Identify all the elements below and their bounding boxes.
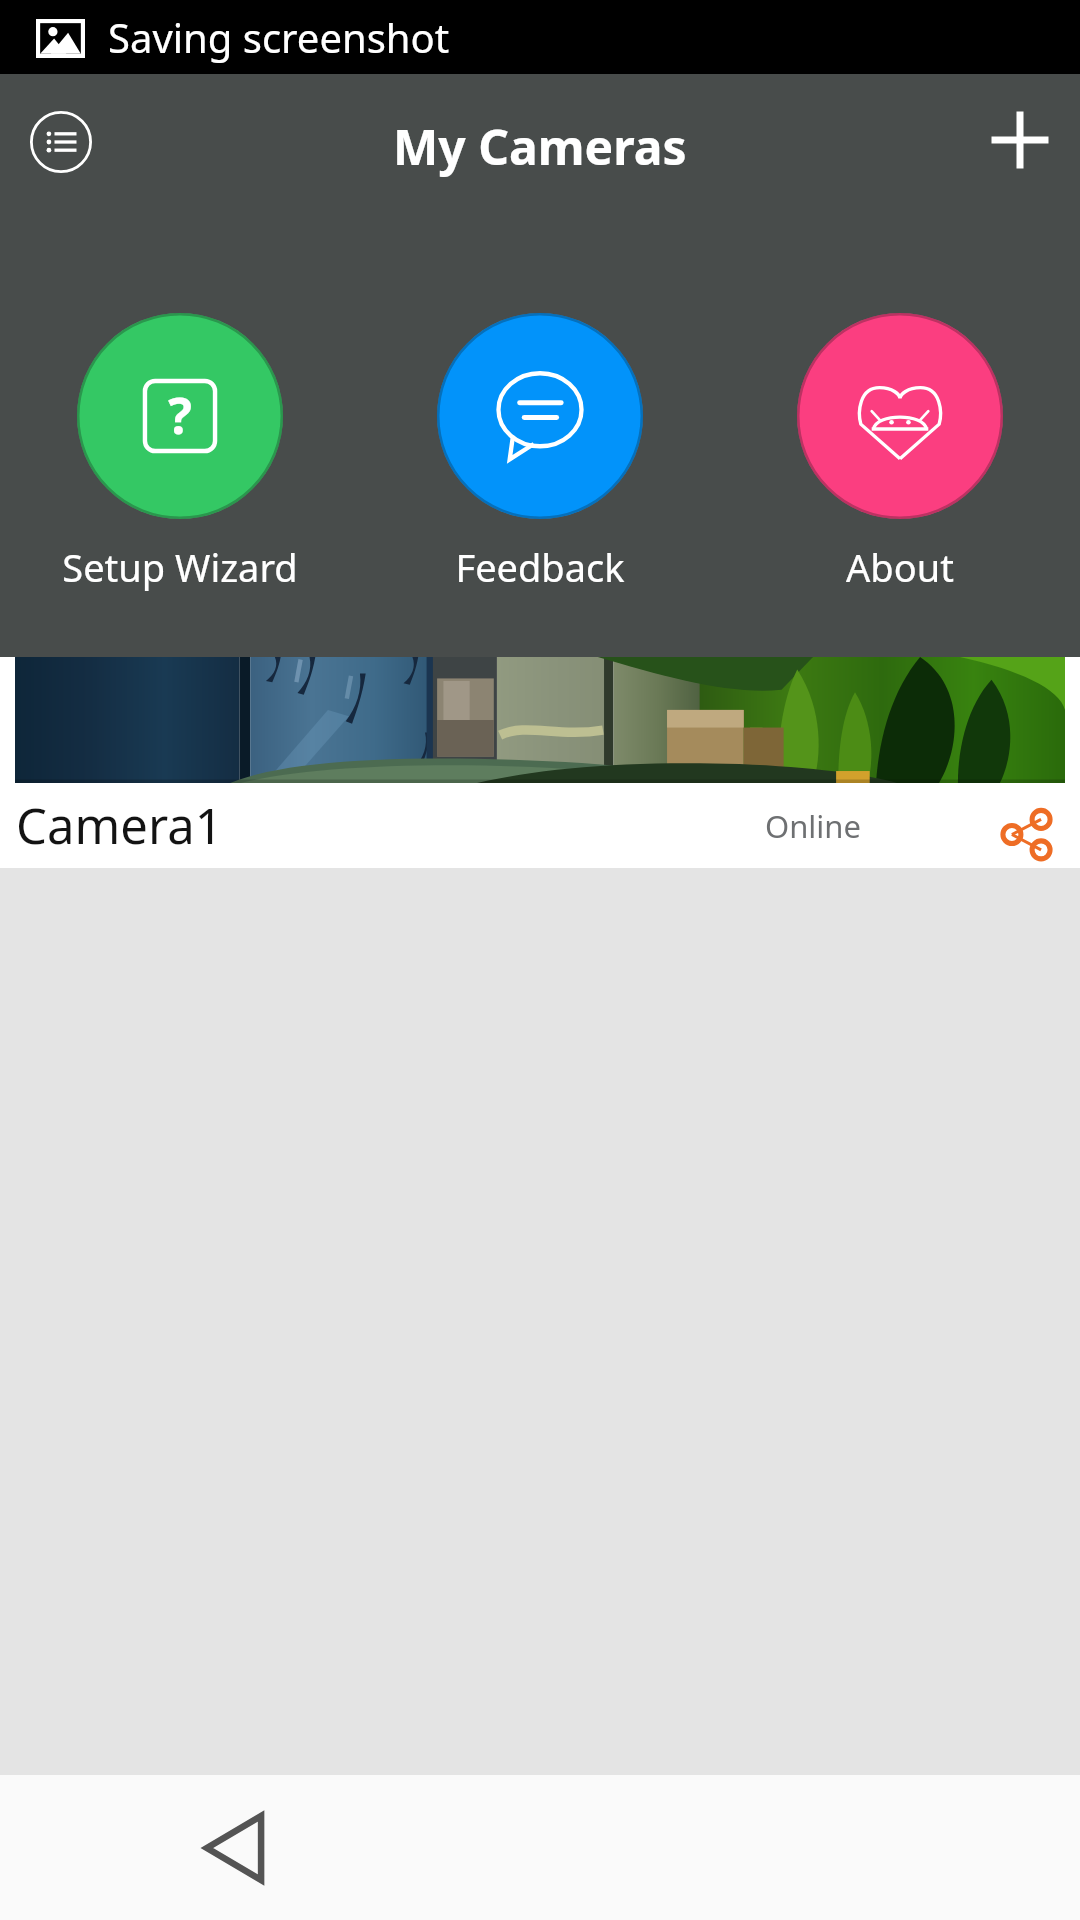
button[interactable]: Share (986, 801, 1066, 867)
button[interactable]: Camera1 (0, 783, 1080, 868)
button[interactable]: Add camera (973, 93, 1067, 187)
button[interactable]: Camera1 live preview (15, 657, 1065, 783)
button[interactable]: Feedback (370, 313, 710, 593)
staticText: Camera1 (16, 792, 223, 859)
staticText: Saving screenshot (108, 10, 450, 64)
button[interactable]: Back (174, 1788, 294, 1908)
button[interactable]: Menu (14, 95, 108, 189)
button[interactable]: About (730, 313, 1070, 593)
staticText: Setup Wizard (62, 541, 298, 593)
staticText: Feedback (455, 541, 625, 593)
staticText: About (846, 541, 954, 593)
staticText: Online (765, 805, 862, 847)
button[interactable]: ? (10, 313, 350, 593)
staticText: ? (168, 381, 192, 449)
staticText: My Cameras (393, 114, 687, 179)
